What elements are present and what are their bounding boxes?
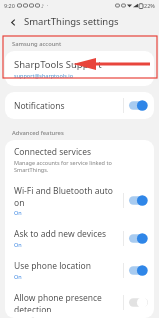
staticText: SmartThings settings (24, 15, 119, 28)
staticText: Samsung account (12, 40, 62, 48)
button[interactable]: Notifications (5, 92, 154, 119)
staticText: 9:20 (4, 2, 15, 9)
button[interactable]: Toggle on (129, 100, 148, 111)
staticText: Manage accounts for service linked to Sm… (14, 159, 145, 173)
button[interactable]: SharpTools Support (5, 51, 154, 86)
button[interactable]: Toggle on (129, 195, 148, 206)
staticText: support@sharptools.io (14, 72, 74, 79)
staticText: Ask to add new devices (14, 228, 107, 240)
staticText: Wi-Fi and Bluetooth auto on (14, 185, 119, 208)
button[interactable]: Toggle on (129, 265, 148, 276)
button[interactable]: Connected services (5, 140, 154, 179)
button[interactable]: Toggle off (129, 297, 148, 308)
staticText: Connected services (14, 146, 92, 158)
staticText: · (47, 2, 49, 9)
staticText: SharpTools Support (14, 58, 102, 71)
button[interactable]: Ask to add new devices (5, 222, 154, 254)
staticText: Advanced features (12, 129, 64, 137)
staticText: Allow phone presence detection (14, 292, 119, 312)
button[interactable]: Wi-Fi and Bluetooth auto on (5, 179, 154, 222)
staticText: Use phone location (14, 260, 92, 272)
staticText: On (14, 209, 22, 216)
button[interactable]: Back (5, 14, 21, 30)
button[interactable]: Allow phone presence detection (5, 286, 154, 318)
staticText: On (14, 273, 22, 280)
staticText: Notifications (14, 100, 65, 112)
button[interactable]: Toggle on (129, 233, 148, 244)
button[interactable]: Use phone location (5, 254, 154, 286)
staticText: 22% (144, 2, 155, 9)
staticText: On (14, 241, 22, 248)
staticText: ♪ (41, 3, 45, 9)
